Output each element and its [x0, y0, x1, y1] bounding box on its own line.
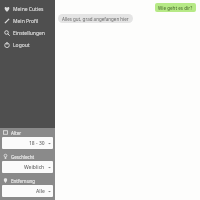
other: Einstellungen: [4, 30, 10, 36]
staticText: Weiblich: [24, 164, 45, 171]
staticText: Entfernung: [11, 178, 35, 184]
staticText: Alles gut, grad angefangen hier: [62, 16, 129, 22]
other: Meine Cuties: [4, 6, 10, 12]
other: Geschlecht: [3, 154, 8, 159]
staticText: Wie geht es dir?: [158, 5, 193, 11]
staticText: 18 - 30: [29, 140, 45, 147]
other: Logout: [4, 42, 10, 48]
button[interactable]: Wie geht es dir?: [155, 3, 196, 12]
staticText: Logout: [13, 42, 30, 49]
button[interactable]: Weiblich: [2, 161, 53, 173]
staticText: Geschlecht: [11, 154, 35, 160]
button[interactable]: Meine Cuties: [0, 3, 55, 15]
staticText: Einstellungen: [13, 30, 45, 37]
other: Alter: [3, 130, 8, 135]
button[interactable]: Alles gut, grad angefangen hier: [58, 14, 133, 23]
button[interactable]: Einstellungen: [0, 27, 55, 39]
button[interactable]: Mein Profil: [0, 15, 55, 27]
staticText: Alle: [36, 188, 45, 195]
staticText: Alter: [11, 130, 22, 136]
button[interactable]: Alle: [2, 185, 53, 197]
other: Mein Profil: [4, 18, 10, 24]
staticText: Mein Profil: [13, 18, 39, 25]
other: Entfernung: [3, 178, 8, 183]
staticText: Meine Cuties: [13, 6, 44, 13]
button[interactable]: Logout: [0, 39, 55, 51]
button[interactable]: 18 - 30: [2, 137, 53, 149]
